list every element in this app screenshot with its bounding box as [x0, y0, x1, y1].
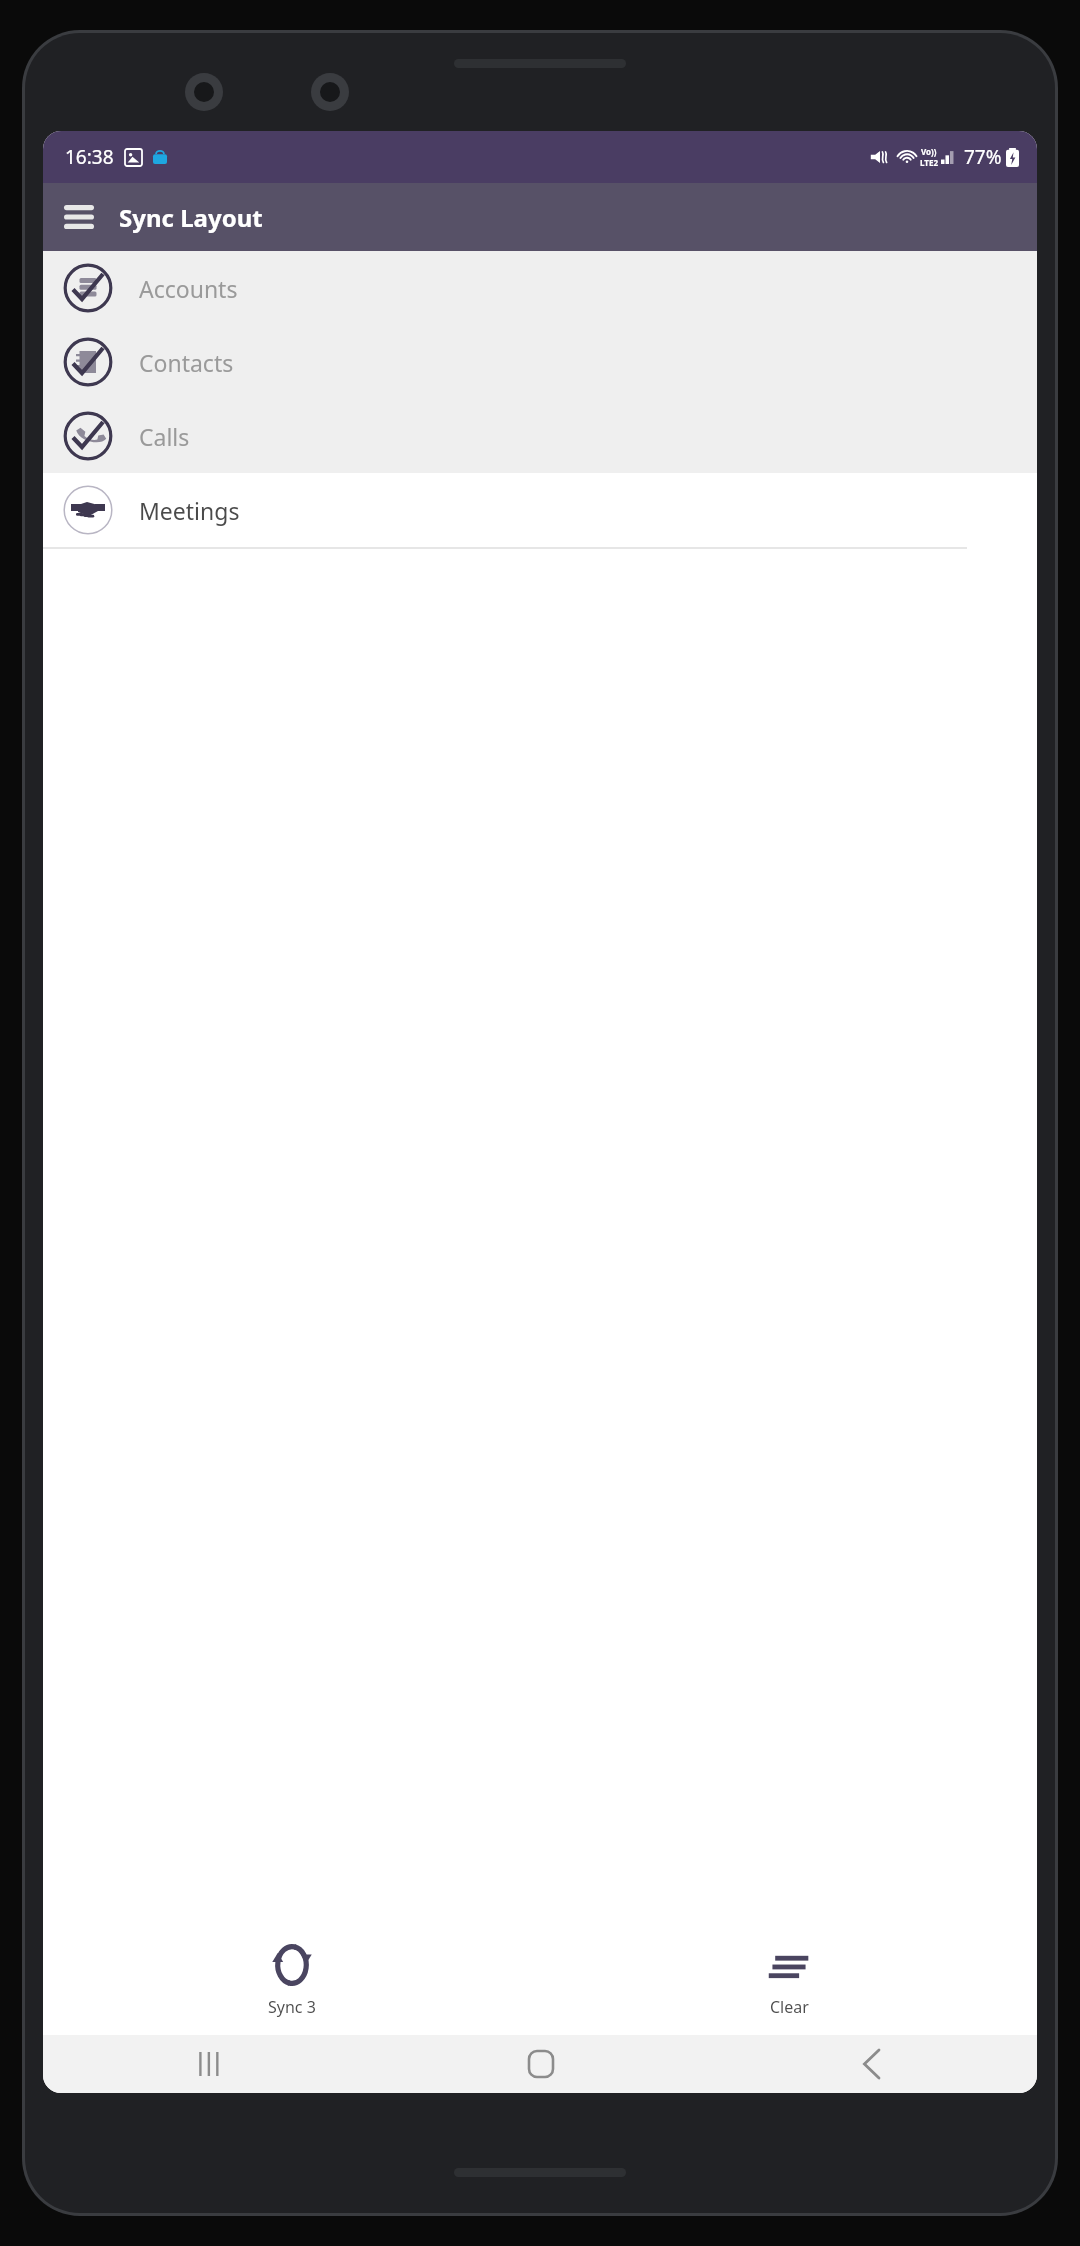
staticText: 77%	[964, 144, 1002, 170]
staticText: Contacts	[139, 347, 234, 378]
button[interactable]: Clear	[540, 1925, 1037, 2035]
button[interactable]: Back	[706, 2035, 1037, 2093]
button[interactable]: Recent apps	[43, 2035, 375, 2093]
button[interactable]: Meetings	[43, 473, 1037, 547]
staticText: Calls	[139, 421, 190, 452]
staticText: Clear	[770, 1996, 809, 2018]
button[interactable]: Calls	[43, 399, 1037, 473]
button[interactable]: Open navigation menu	[51, 189, 107, 245]
staticText: Meetings	[139, 495, 240, 526]
staticText: Sync Layout	[119, 201, 263, 234]
staticText: LTE2	[920, 157, 938, 168]
button[interactable]: Home	[375, 2035, 706, 2093]
staticText: Sync 3	[268, 1996, 316, 2018]
button[interactable]: Contacts	[43, 325, 1037, 399]
button[interactable]: Sync 3	[43, 1925, 540, 2035]
staticText: Accounts	[139, 273, 238, 304]
staticText: Vo))	[921, 146, 937, 157]
staticText: 16:38	[65, 144, 114, 170]
button[interactable]: Accounts	[43, 251, 1037, 325]
